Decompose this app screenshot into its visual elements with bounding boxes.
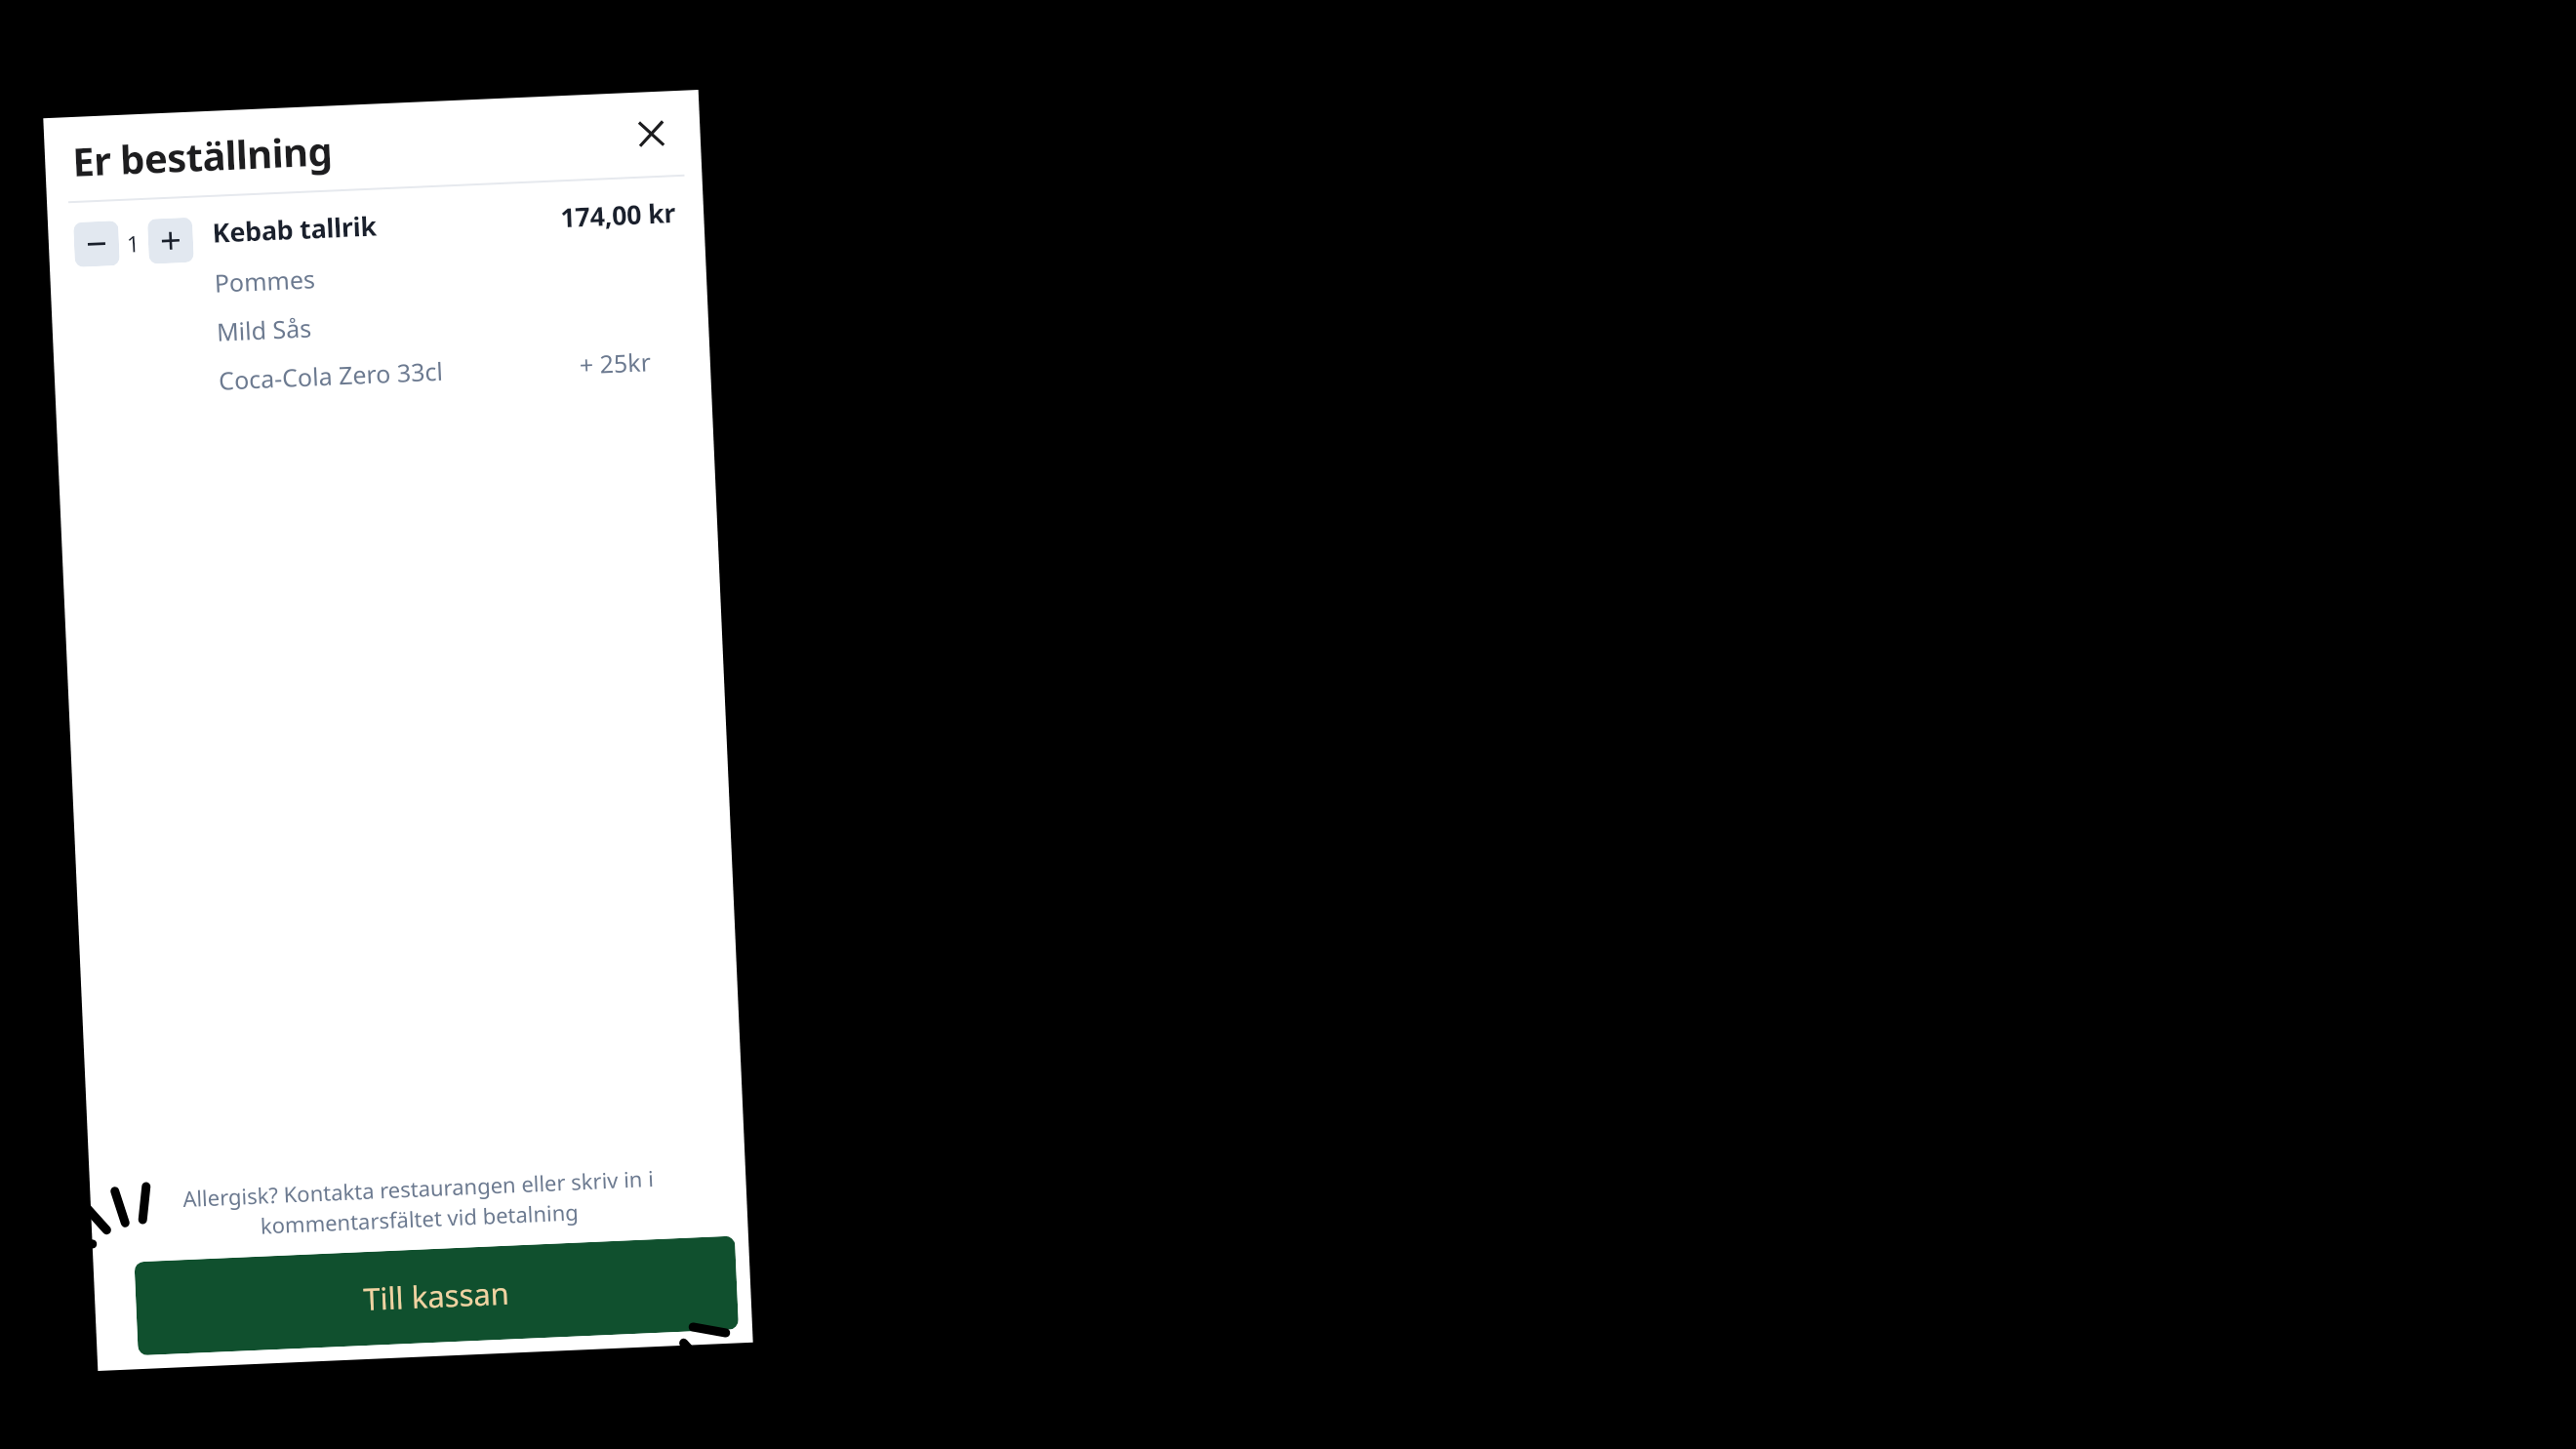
- button[interactable]: Decrease quantity: [73, 221, 120, 267]
- staticText: 174,00 kr: [559, 194, 677, 235]
- staticText: Till kassan: [362, 1272, 511, 1319]
- staticText: + 25kr: [579, 345, 652, 381]
- button[interactable]: Increase quantity: [147, 217, 194, 264]
- staticText: Pommes: [214, 262, 317, 299]
- staticText: Mild Sås: [216, 311, 313, 348]
- staticText: Er beställning: [71, 123, 333, 187]
- staticText: 1: [126, 227, 141, 258]
- button[interactable]: Close: [625, 107, 678, 160]
- button[interactable]: Till kassan: [134, 1236, 739, 1356]
- staticText: Allergisk? Kontakta restaurangen eller s…: [123, 1161, 714, 1247]
- staticText: Kebab tallrik: [212, 207, 378, 251]
- staticText: Coca-Cola Zero 33cl: [218, 354, 444, 397]
